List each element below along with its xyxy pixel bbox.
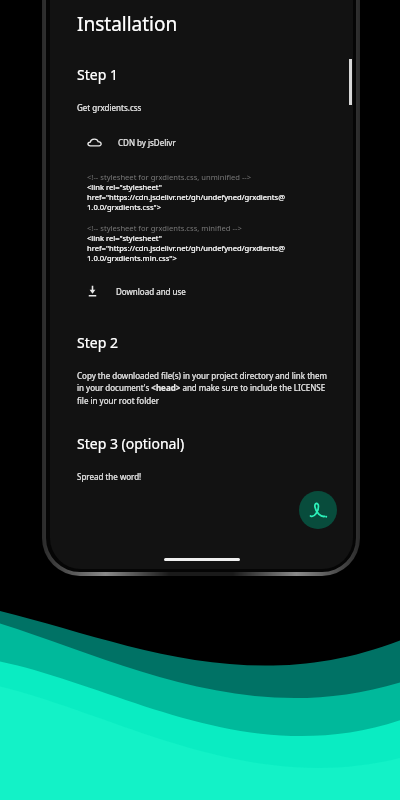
staticText: 1.0.0/grxdients.min.css"> — [87, 253, 177, 263]
staticText: CDN by jsDelivr — [118, 137, 176, 148]
staticText: Installation — [77, 11, 178, 37]
staticText: Download and use — [116, 286, 186, 297]
staticText: 1.0.0/grxdients.css"> — [87, 202, 161, 212]
staticText: <!-- stylesheet for grxdients.css, minif… — [87, 223, 242, 233]
button[interactable]: CDN by jsDelivr — [77, 135, 331, 150]
staticText: <link rel="stylesheet" — [87, 182, 162, 192]
staticText: href="https://cdn.jsdelivr.net/gh/undefy… — [87, 192, 286, 202]
button[interactable]: Open grxdients — [299, 491, 337, 529]
staticText: href="https://cdn.jsdelivr.net/gh/undefy… — [87, 243, 286, 253]
staticText: Step 2 — [77, 333, 118, 352]
staticText: <!-- stylesheet for grxdients.css, unmin… — [87, 172, 252, 182]
staticText: <link rel="stylesheet" — [87, 233, 162, 243]
staticText: Copy the downloaded file(s) in your proj… — [77, 370, 331, 406]
button[interactable]: Download and use — [77, 283, 331, 299]
staticText: Get grxdients.css — [77, 102, 142, 113]
staticText: Step 3 (optional) — [77, 434, 185, 453]
staticText: Spread the word! — [77, 471, 142, 482]
staticText: Step 1 — [77, 65, 118, 84]
